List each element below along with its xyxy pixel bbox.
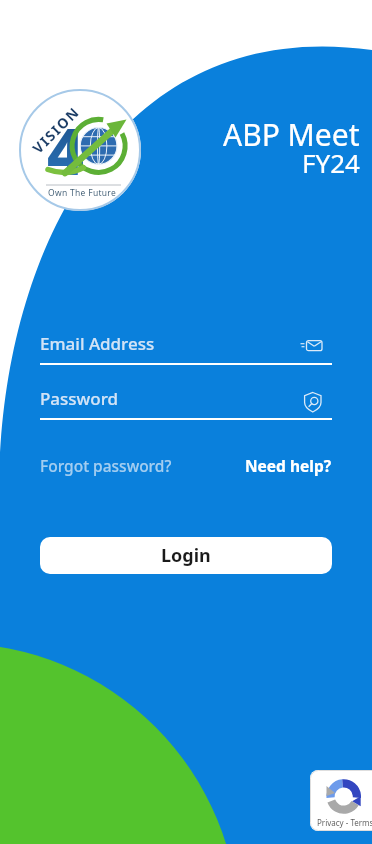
button[interactable]: Login — [40, 537, 332, 574]
staticText: Login — [161, 543, 211, 568]
button[interactable]: Need help? — [245, 455, 332, 476]
staticText: ABP Meet — [223, 114, 360, 155]
staticText: Password — [40, 387, 119, 410]
button[interactable]: Email Address — [40, 332, 332, 368]
staticText: 4 — [47, 107, 84, 194]
staticText: Own The Future — [48, 187, 117, 199]
button[interactable]: Privacy - Terms — [310, 770, 372, 831]
button[interactable]: Password — [40, 390, 332, 423]
staticText: FY24 — [302, 145, 360, 180]
staticText: Email Address — [40, 332, 155, 355]
button[interactable]: Forgot password? — [40, 455, 172, 476]
staticText: Privacy - Terms — [317, 817, 372, 828]
staticText: VISION — [28, 102, 84, 157]
